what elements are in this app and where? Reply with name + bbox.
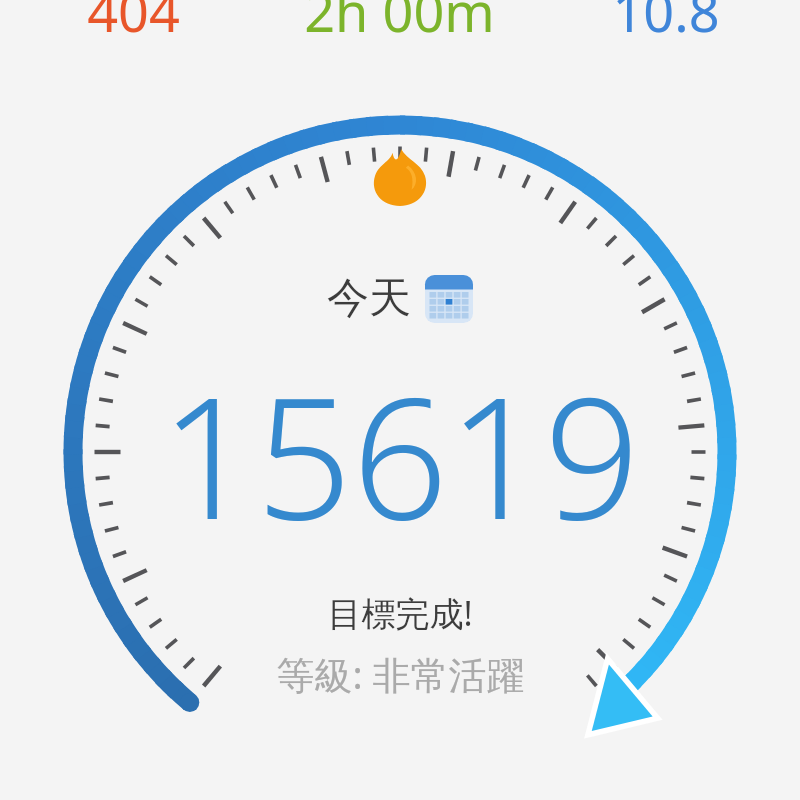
- staticText: 2h 00m: [304, 0, 495, 48]
- staticText: 15619: [160, 339, 640, 568]
- button[interactable]: Step goal progress ring: [0, 0, 800, 800]
- button[interactable]: 15619: [160, 339, 640, 568]
- button[interactable]: 今天: [327, 272, 473, 325]
- staticText: 404: [87, 0, 180, 48]
- staticText: 10.8: [612, 0, 720, 48]
- button[interactable]: 10.8: [532, 0, 800, 48]
- staticText: 今天: [327, 272, 411, 325]
- staticText: 等級: 非常活躍: [276, 648, 525, 700]
- button[interactable]: 2h 00m: [266, 0, 532, 48]
- button[interactable]: 404: [0, 0, 266, 48]
- staticText: 目標完成!: [327, 590, 473, 636]
- button[interactable]: Calories burned: [371, 148, 429, 206]
